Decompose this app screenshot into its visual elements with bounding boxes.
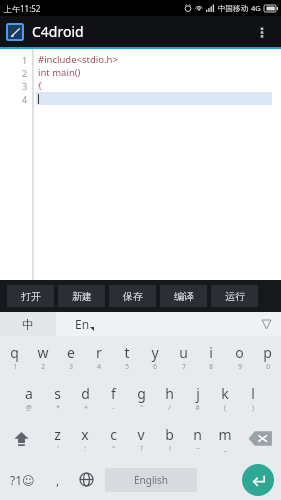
staticText: 保存 bbox=[123, 290, 143, 303]
button[interactable]: u bbox=[169, 336, 197, 377]
button[interactable]: b bbox=[155, 418, 183, 459]
staticText: 3 bbox=[22, 80, 28, 92]
button[interactable]: h bbox=[155, 377, 183, 418]
button[interactable]: e bbox=[57, 336, 85, 377]
staticText: ?1☺ bbox=[10, 472, 35, 488]
staticText: , bbox=[56, 472, 60, 488]
staticText: 中国移动 bbox=[218, 4, 248, 13]
button[interactable]: i bbox=[197, 336, 225, 377]
staticText: b bbox=[165, 425, 174, 444]
button[interactable]: En bbox=[56, 312, 112, 336]
button[interactable]: Shift bbox=[3, 421, 40, 456]
button[interactable]: Change language bbox=[71, 459, 101, 500]
staticText: En bbox=[75, 316, 90, 332]
staticText: w bbox=[37, 343, 49, 362]
staticText: " bbox=[140, 403, 143, 412]
staticText: _ bbox=[224, 444, 227, 453]
button[interactable]: More options bbox=[249, 19, 275, 45]
staticText: v bbox=[137, 425, 145, 444]
button[interactable]: c bbox=[99, 418, 127, 459]
button[interactable]: 打开 bbox=[7, 285, 54, 307]
staticText: z bbox=[54, 425, 61, 444]
staticText: x bbox=[81, 425, 89, 444]
staticText: 4 bbox=[97, 362, 101, 371]
staticText: - bbox=[112, 403, 115, 412]
button[interactable]: 新建 bbox=[58, 285, 105, 307]
button[interactable]: English bbox=[105, 468, 197, 492]
button[interactable]: 中 bbox=[0, 312, 56, 336]
staticText: 0 bbox=[266, 362, 270, 371]
button[interactable]: g bbox=[127, 377, 155, 418]
staticText: / bbox=[168, 403, 171, 412]
button[interactable]: q bbox=[0, 336, 29, 377]
button[interactable]: a bbox=[15, 377, 43, 418]
staticText: c bbox=[110, 425, 117, 444]
button[interactable]: d bbox=[71, 377, 99, 418]
staticText: 打开 bbox=[21, 290, 41, 303]
staticText: 4G bbox=[251, 3, 261, 13]
button[interactable]: j bbox=[183, 377, 211, 418]
staticText: ( bbox=[224, 403, 226, 412]
staticText: # bbox=[195, 403, 200, 412]
staticText: n bbox=[193, 425, 202, 444]
staticText: : bbox=[84, 444, 86, 453]
staticText: @ bbox=[26, 403, 32, 412]
staticText: ! bbox=[169, 444, 171, 453]
staticText: 2 bbox=[22, 67, 28, 79]
staticText: int main() bbox=[38, 66, 81, 79]
button[interactable]: Backspace bbox=[242, 421, 278, 456]
button[interactable]: l bbox=[239, 377, 267, 418]
button[interactable]: Enter bbox=[242, 464, 274, 496]
button[interactable]: k bbox=[211, 377, 239, 418]
button[interactable]: x bbox=[71, 418, 99, 459]
staticText: ~ bbox=[196, 444, 200, 453]
staticText: 1 bbox=[13, 362, 17, 371]
button[interactable]: v bbox=[127, 418, 155, 459]
staticText: q bbox=[10, 343, 19, 362]
button[interactable]: 保存 bbox=[109, 285, 156, 307]
staticText: e bbox=[67, 343, 75, 362]
staticText: 上午11:52 bbox=[4, 3, 41, 14]
button[interactable]: App icon bbox=[6, 23, 24, 41]
button[interactable]: m bbox=[211, 418, 239, 459]
staticText: u bbox=[179, 343, 188, 362]
staticText: #include<stdio.h> bbox=[38, 53, 118, 66]
staticText: ? bbox=[140, 444, 143, 453]
staticText: 6 bbox=[153, 362, 157, 371]
staticText: s bbox=[54, 384, 61, 403]
staticText: English bbox=[134, 473, 169, 487]
button[interactable]: ?1☺ bbox=[0, 459, 44, 500]
staticText: l bbox=[251, 384, 255, 403]
staticText: t bbox=[124, 343, 130, 362]
button[interactable]: s bbox=[43, 377, 71, 418]
staticText: C4droid bbox=[32, 22, 84, 41]
staticText: { bbox=[38, 79, 42, 92]
button[interactable]: , bbox=[44, 459, 71, 500]
staticText: 中 bbox=[22, 317, 34, 332]
button[interactable]: r bbox=[85, 336, 113, 377]
button[interactable]: n bbox=[183, 418, 211, 459]
button[interactable]: o bbox=[225, 336, 253, 377]
button[interactable]: 运行 bbox=[211, 285, 258, 307]
staticText: 5 bbox=[125, 362, 129, 371]
button[interactable]: t bbox=[113, 336, 141, 377]
staticText: * bbox=[56, 403, 60, 412]
button[interactable]: p bbox=[253, 336, 281, 377]
staticText: f bbox=[111, 384, 116, 403]
staticText: i bbox=[209, 343, 213, 362]
staticText: m bbox=[218, 425, 232, 444]
staticText: 新建 bbox=[72, 290, 92, 303]
staticText: o bbox=[235, 343, 244, 362]
staticText: ) bbox=[252, 403, 254, 412]
staticText: 8 bbox=[209, 362, 213, 371]
staticText: y bbox=[151, 343, 159, 362]
button[interactable]: z bbox=[43, 418, 71, 459]
button[interactable]: Collapse keyboard bbox=[251, 312, 281, 336]
staticText: 2 bbox=[41, 362, 45, 371]
button[interactable]: 编译 bbox=[160, 285, 207, 307]
staticText: 1 bbox=[22, 54, 28, 66]
button[interactable]: w bbox=[29, 336, 57, 377]
staticText: 3 bbox=[69, 362, 73, 371]
button[interactable]: y bbox=[141, 336, 169, 377]
button[interactable]: f bbox=[99, 377, 127, 418]
